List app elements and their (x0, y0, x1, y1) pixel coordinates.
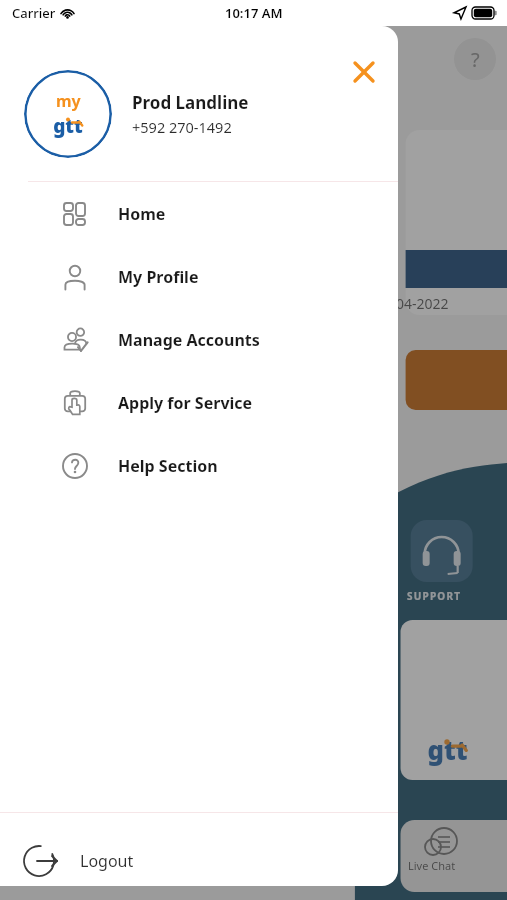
staticText: Live Chat (408, 858, 456, 873)
staticText: gtt (427, 733, 468, 768)
staticText: Carrier (12, 4, 56, 22)
staticText: Manage Accounts (118, 329, 260, 351)
staticText: SUPPORT (407, 589, 462, 603)
button[interactable]: Help (454, 38, 496, 80)
button[interactable]: Home (0, 187, 398, 241)
staticText: +592 270-1492 (132, 117, 232, 137)
staticText: Logout (80, 850, 134, 872)
staticText: 10:17 AM (225, 4, 283, 22)
staticText: Home (118, 203, 166, 225)
staticText: ? (471, 46, 480, 73)
staticText: Help Section (118, 455, 218, 477)
button[interactable]: Close menu (344, 52, 384, 92)
button[interactable]: Help Section (0, 439, 398, 493)
staticText: my (56, 90, 81, 112)
button[interactable]: my (0, 66, 398, 162)
button[interactable]: Logout (0, 826, 398, 886)
staticText: 04-2022 (396, 294, 449, 313)
staticText: My Profile (118, 266, 199, 288)
staticText: Apply for Service (118, 392, 253, 414)
staticText: gtt (53, 113, 83, 139)
staticText: Prod Landline (132, 91, 249, 114)
button[interactable]: My Profile (0, 250, 398, 304)
button[interactable]: Manage Accounts (0, 313, 398, 367)
button[interactable]: Apply for Service (0, 376, 398, 430)
